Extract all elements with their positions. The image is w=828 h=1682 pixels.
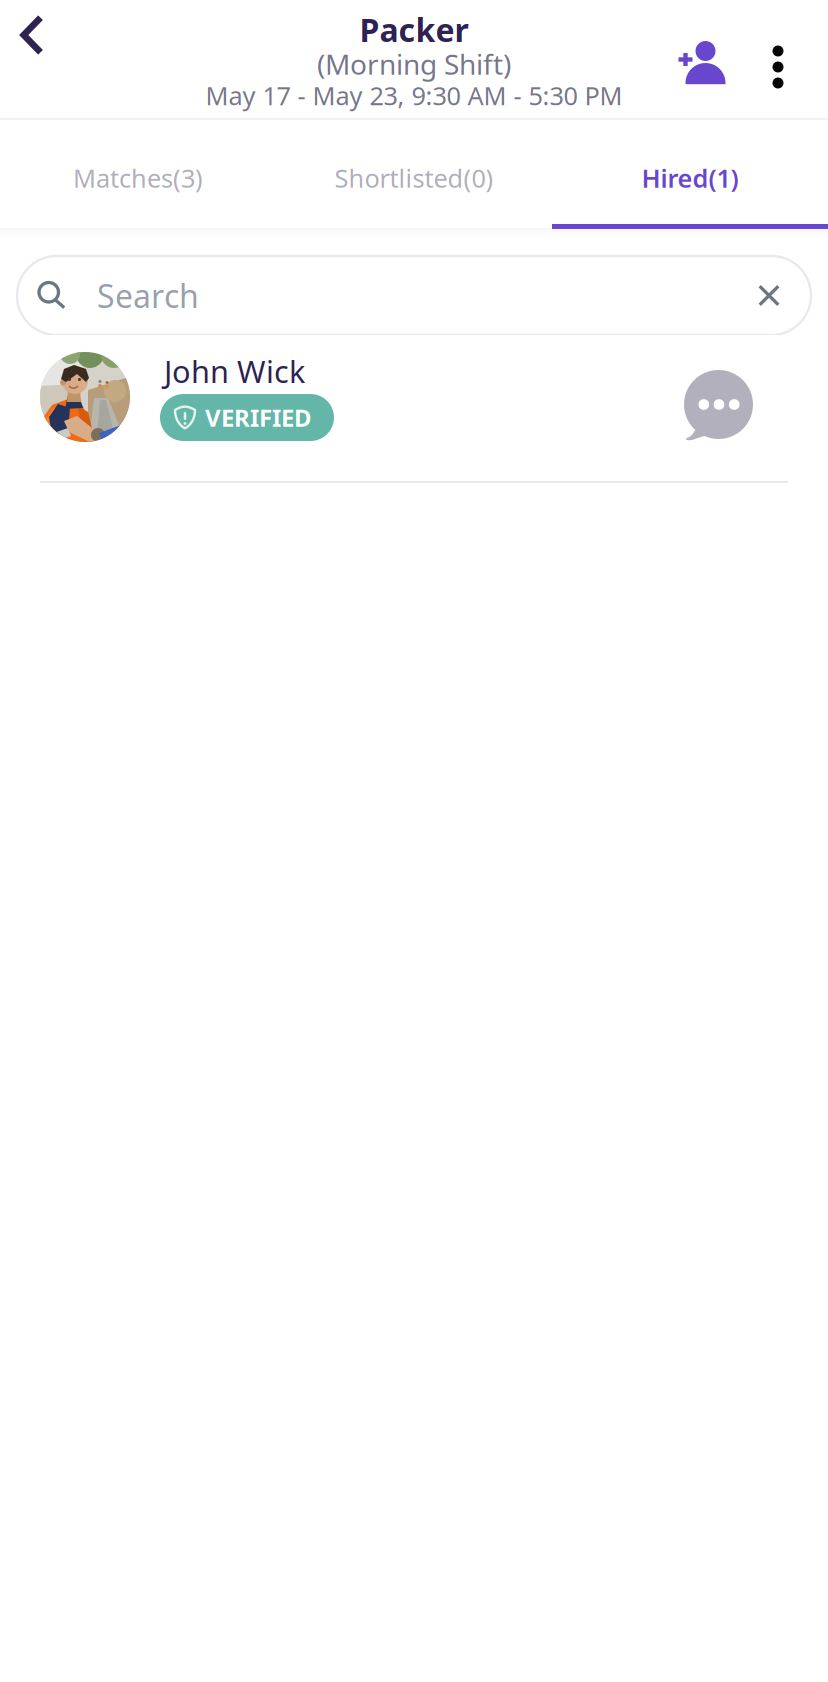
staticText: Hired(1) — [641, 161, 738, 195]
staticText: Packer — [359, 8, 468, 51]
button[interactable]: Matches(3) — [0, 120, 276, 228]
staticText: May 17 - May 23, 9:30 AM - 5:30 PM — [205, 79, 622, 112]
button[interactable]: Clear search — [741, 267, 797, 323]
button[interactable]: Hired(1) — [552, 120, 828, 228]
button[interactable]: Message John Wick — [676, 363, 761, 448]
staticText: (Morning Shift) — [317, 45, 511, 83]
button[interactable]: Shortlisted(0) — [276, 120, 552, 228]
staticText: VERIFIED — [205, 402, 312, 433]
button[interactable]: Add worker — [666, 27, 740, 99]
staticText: Search — [97, 274, 199, 317]
staticText: John Wick — [164, 351, 305, 391]
button[interactable]: John Wick — [0, 335, 828, 462]
staticText: Matches(3) — [73, 161, 203, 195]
staticText: Shortlisted(0) — [334, 161, 493, 195]
button[interactable]: More options — [749, 31, 807, 103]
button[interactable]: Back — [0, 1, 64, 69]
